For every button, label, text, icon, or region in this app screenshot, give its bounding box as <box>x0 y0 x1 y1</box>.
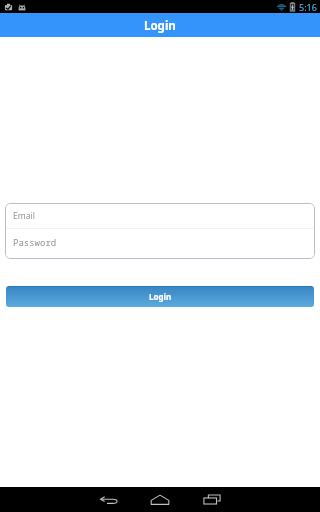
staticText: Password <box>13 236 57 248</box>
button[interactable]: Login <box>6 286 314 307</box>
staticText: Login <box>144 18 176 34</box>
staticText: Login <box>149 291 172 302</box>
staticText: 5:16 <box>299 1 317 13</box>
staticText: Email <box>13 210 35 222</box>
button[interactable]: Email <box>5 203 315 228</box>
button[interactable]: Back <box>82 487 134 512</box>
button[interactable]: Recent apps <box>186 487 238 512</box>
button[interactable]: Home <box>134 487 186 512</box>
button[interactable]: Password <box>5 229 315 259</box>
